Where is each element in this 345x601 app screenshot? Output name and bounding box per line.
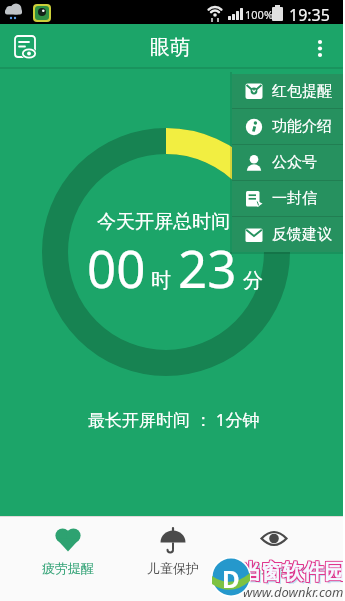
button[interactable] bbox=[306, 29, 334, 63]
button[interactable]: 红包提醒 bbox=[232, 74, 345, 108]
staticText: 时 bbox=[151, 268, 171, 293]
staticText: 00 bbox=[87, 233, 146, 302]
staticText: 反馈建议 bbox=[272, 225, 332, 244]
staticText: 100% bbox=[245, 7, 274, 22]
button[interactable]: 功能介绍 bbox=[232, 109, 345, 144]
staticText: 功能介绍 bbox=[272, 117, 332, 136]
staticText: 23 bbox=[178, 233, 237, 302]
staticText: 公众号 bbox=[272, 153, 317, 172]
button[interactable]: 反馈建议 bbox=[232, 217, 345, 252]
staticText: 当窗软件园 bbox=[240, 558, 345, 584]
staticText: 当窗软件园 bbox=[241, 559, 345, 585]
staticText: 疲劳提醒 bbox=[42, 560, 94, 576]
staticText: 当窗软件园 bbox=[241, 558, 345, 584]
staticText: 当窗软件园 bbox=[242, 561, 345, 587]
button[interactable] bbox=[12, 35, 38, 61]
staticText: 最长开屏时间 ： 1分钟 bbox=[88, 408, 260, 431]
staticText: www.downkr.com bbox=[243, 583, 344, 601]
button[interactable]: 疲劳提醒 bbox=[15, 516, 120, 601]
button[interactable]: 一封信 bbox=[232, 181, 345, 216]
staticText: 一封信 bbox=[272, 189, 317, 208]
staticText: 今天开屏总时间 bbox=[97, 210, 230, 234]
staticText: 当窗软件园 bbox=[239, 558, 344, 584]
button[interactable]: 公众号 bbox=[232, 145, 345, 180]
staticText: 分 bbox=[243, 268, 263, 293]
staticText: D bbox=[222, 562, 240, 595]
staticText: 当窗软件园 bbox=[239, 559, 344, 585]
staticText: 当窗软件园 bbox=[239, 560, 344, 586]
staticText: 当窗软件园 bbox=[240, 559, 345, 585]
staticText: 红包提醒 bbox=[272, 82, 332, 101]
staticText: 儿童保护 bbox=[147, 560, 199, 576]
button[interactable]: 儿童保护 bbox=[120, 516, 225, 601]
staticText: 视力测试 bbox=[248, 560, 300, 576]
staticText: 当窗软件园 bbox=[241, 560, 345, 586]
staticText: 当窗软件园 bbox=[240, 560, 345, 586]
staticText: 眼萌 bbox=[150, 35, 190, 60]
staticText: 19:35 bbox=[289, 4, 330, 26]
button[interactable]: 视力测试 bbox=[221, 516, 326, 601]
